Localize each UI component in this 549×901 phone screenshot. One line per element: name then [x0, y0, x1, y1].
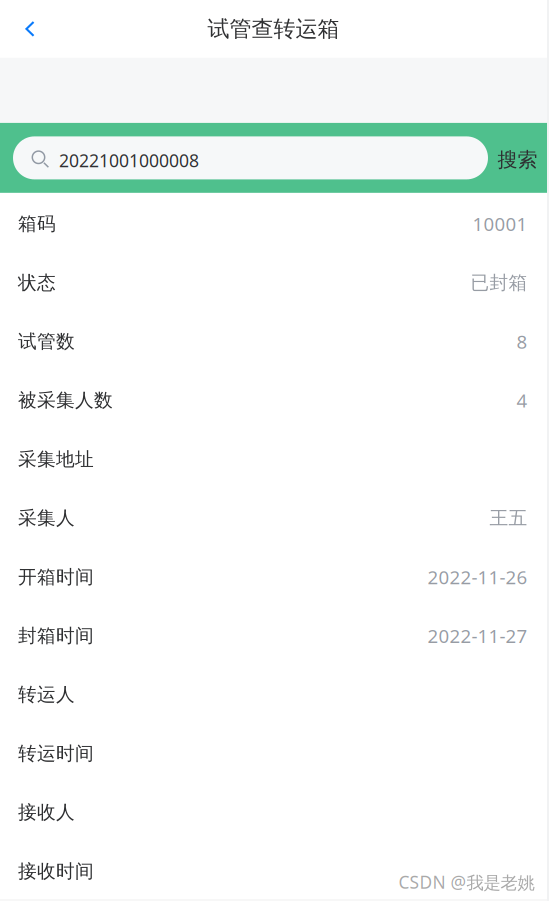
staticText: 试管数 — [18, 330, 75, 353]
button[interactable]: 转运时间 — [0, 722, 547, 781]
button[interactable]: 接收时间 — [0, 840, 547, 899]
staticText: 接收时间 — [18, 859, 94, 883]
staticText: 20221001000008 — [59, 148, 199, 172]
staticText: 封箱时间 — [18, 624, 94, 647]
button[interactable]: 封箱时间 — [0, 605, 547, 664]
staticText: 采集地址 — [18, 447, 94, 471]
staticText: 状态 — [18, 271, 56, 294]
staticText: 10001 — [472, 211, 527, 236]
button[interactable]: Back — [0, 0, 60, 58]
staticText: 接收人 — [18, 801, 75, 824]
staticText: 2022-11-27 — [427, 623, 527, 648]
button[interactable]: 状态 — [0, 252, 547, 311]
button[interactable]: 搜索 — [488, 136, 547, 179]
staticText: CSDN @我是老姚 — [398, 870, 534, 894]
button[interactable]: 采集人 — [0, 487, 547, 546]
staticText: 开箱时间 — [18, 565, 94, 589]
staticText: 被采集人数 — [18, 389, 113, 412]
button[interactable]: 试管数 — [0, 311, 547, 369]
staticText: 采集人 — [18, 506, 75, 530]
staticText: 2022-11-26 — [427, 564, 527, 590]
staticText: 搜索 — [497, 147, 537, 172]
staticText: 箱码 — [18, 212, 56, 236]
button[interactable]: 被采集人数 — [0, 369, 547, 428]
button[interactable]: 接收人 — [0, 781, 547, 840]
button[interactable]: 箱码 — [0, 193, 547, 252]
staticText: 4 — [516, 388, 527, 413]
staticText: 已封箱 — [470, 271, 527, 294]
staticText: 8 — [516, 329, 527, 354]
staticText: 转运人 — [18, 683, 75, 706]
staticText: 试管查转运箱 — [207, 15, 339, 43]
staticText: 王五 — [489, 506, 527, 530]
staticText: 转运时间 — [18, 742, 94, 765]
button[interactable]: 转运人 — [0, 664, 547, 723]
button[interactable]: 采集地址 — [0, 428, 547, 487]
button[interactable]: 开箱时间 — [0, 546, 547, 605]
